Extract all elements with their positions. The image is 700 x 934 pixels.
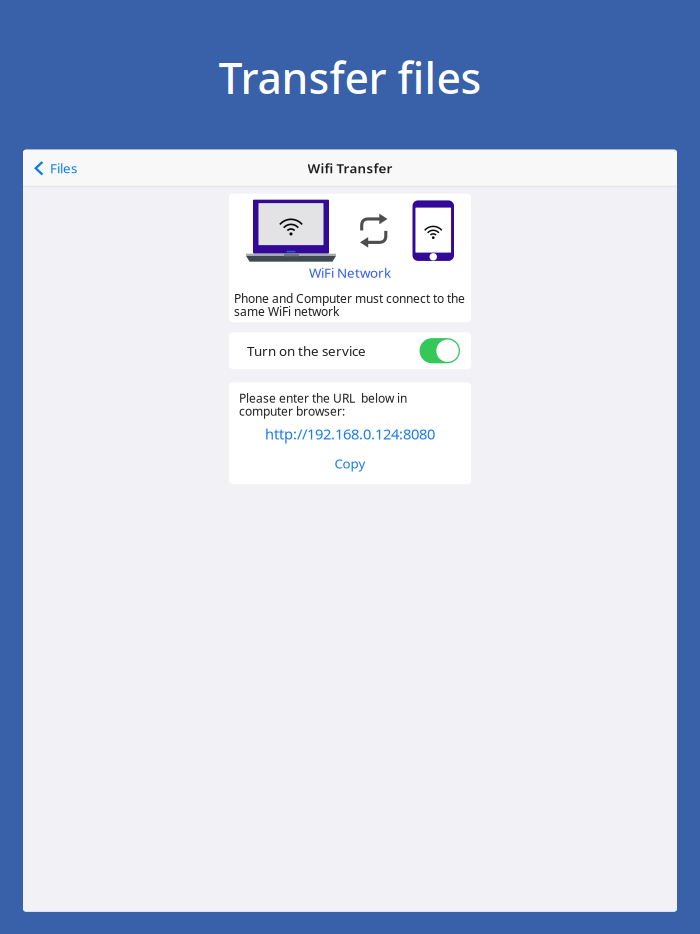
button[interactable]: Copy (322, 453, 377, 474)
staticText: WiFi Network (309, 264, 391, 281)
staticText: same WiFi network (234, 303, 339, 319)
staticText: Wifi Transfer (307, 159, 392, 177)
button[interactable]: Files (23, 150, 87, 187)
staticText: Copy (334, 455, 365, 472)
staticText: Please enter the URL below in (239, 390, 407, 406)
staticText: Files (50, 159, 77, 177)
staticText: Turn on the service (247, 342, 366, 360)
staticText: Phone and Computer must connect to the (234, 290, 465, 306)
staticText: Transfer files (218, 49, 481, 106)
staticText: http://192.168.0.124:8080 (265, 424, 435, 444)
staticText: computer browser: (239, 403, 345, 419)
button[interactable]: Turn on the service (229, 332, 471, 369)
